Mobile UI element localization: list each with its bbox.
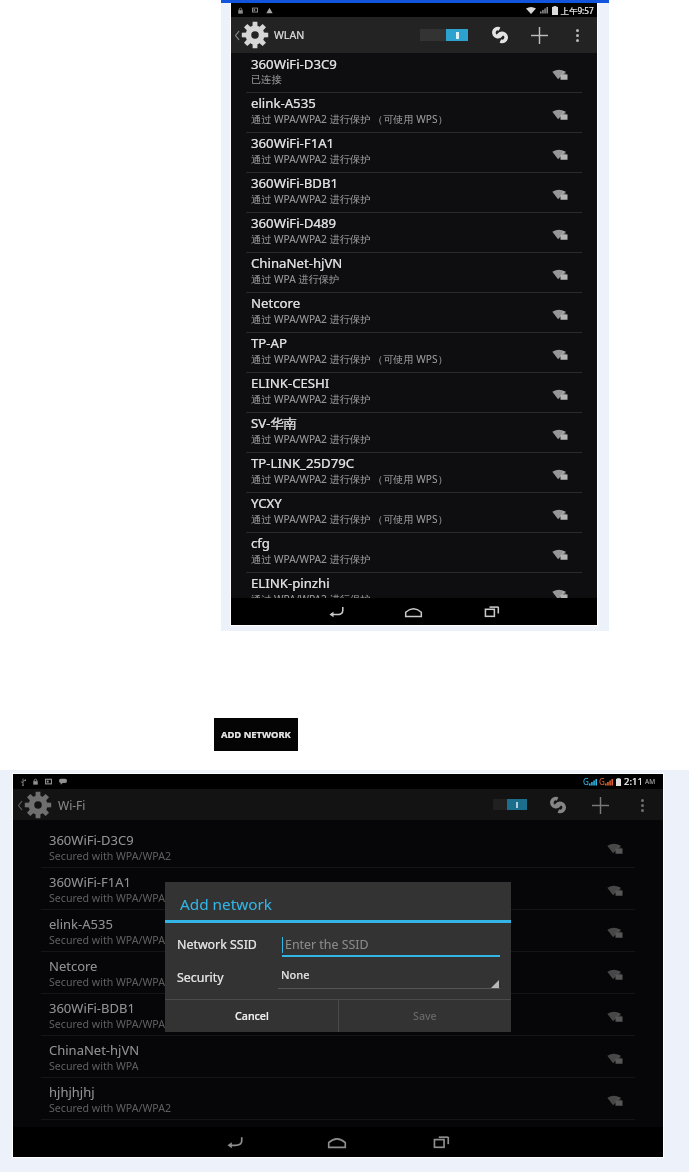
button[interactable]: Back <box>319 598 353 625</box>
staticText: 通过 WPA/WPA2 进行保护 <box>251 592 371 598</box>
staticText: 已连接 <box>251 73 282 86</box>
button[interactable]: ELINK-CESHI <box>231 373 597 413</box>
staticText: 上午9:57 <box>561 5 594 16</box>
staticText: Secured with WPA/WPA2 <box>49 891 172 905</box>
button[interactable]: SV-华南 <box>231 413 597 453</box>
button[interactable]: More options <box>627 790 657 820</box>
staticText: ELINK-pinzhi <box>251 574 330 592</box>
button[interactable]: Scan <box>543 790 573 820</box>
staticText: 通过 WPA/WPA2 进行保护 <box>251 152 371 166</box>
staticText: 360WiFi-BDB1 <box>251 174 339 192</box>
button[interactable] <box>231 20 270 50</box>
staticText: Netcore <box>251 294 301 312</box>
staticText: ELINK-CESHI <box>251 374 330 392</box>
button[interactable]: cfg <box>231 533 597 573</box>
staticText: Netcore <box>49 957 98 975</box>
staticText: 通过 WPA/WPA2 进行保护 <box>251 392 371 406</box>
button[interactable]: hjhjhjhj <box>13 1078 663 1120</box>
button[interactable]: Save <box>339 1000 511 1032</box>
button[interactable]: Enter the SSID <box>282 932 500 958</box>
button[interactable]: ADD NETWORK <box>214 718 298 751</box>
button[interactable]: TP-LINK_25D79C <box>231 453 597 493</box>
button[interactable]: Netcore <box>231 293 597 333</box>
staticText: Add network <box>180 894 272 915</box>
staticText: Enter the SSID <box>285 936 369 953</box>
button[interactable]: Add network <box>524 20 554 50</box>
button[interactable]: 360WiFi-D3C9 <box>13 826 663 868</box>
staticText: TP-AP <box>251 334 287 352</box>
staticText: SV-华南 <box>251 414 297 432</box>
staticText: 360WiFi-D489 <box>251 214 337 232</box>
staticText: 360WiFi-F1A1 <box>251 134 335 152</box>
button[interactable]: Home <box>396 598 430 625</box>
button[interactable]: 360WiFi-D489 <box>231 213 597 253</box>
staticText: ChinaNet-hjVN <box>49 1041 140 1059</box>
button[interactable]: Home <box>320 1127 354 1157</box>
button[interactable]: Recent apps <box>475 598 509 625</box>
button[interactable] <box>417 29 471 41</box>
staticText: 360WiFi-D3C9 <box>251 55 337 73</box>
staticText: TP-LINK_25D79C <box>251 454 355 472</box>
button[interactable] <box>489 799 531 810</box>
staticText: Secured with WPA/WPA2 <box>49 975 172 989</box>
button[interactable] <box>13 790 53 820</box>
staticText: Secured with WPA/WPA2 <box>49 849 172 863</box>
staticText: None <box>281 967 310 982</box>
staticText: 通过 WPA/WPA2 进行保护 <box>251 552 371 566</box>
button[interactable]: None <box>278 964 500 991</box>
staticText: G <box>599 776 605 787</box>
staticText: 通过 WPA/WPA2 进行保护 （可使用 WPS） <box>251 112 448 126</box>
staticText: WLAN <box>274 28 305 42</box>
button[interactable]: Back <box>218 1127 252 1157</box>
staticText: elink-A535 <box>251 94 316 112</box>
button[interactable]: Netcore <box>13 952 663 994</box>
staticText: cfg <box>251 534 270 552</box>
staticText: 360WiFi-D3C9 <box>49 831 134 849</box>
staticText: Cancel <box>235 1009 269 1024</box>
button[interactable]: 360WiFi-D3C9 <box>231 53 597 93</box>
staticText: ChinaNet-hjVN <box>251 254 343 272</box>
staticText: 通过 WPA/WPA2 进行保护 <box>251 232 371 246</box>
button[interactable]: Recent apps <box>424 1127 458 1157</box>
button[interactable]: ChinaNet-hjVN <box>231 253 597 293</box>
staticText: YCXY <box>251 494 282 512</box>
staticText: 通过 WPA/WPA2 进行保护 <box>251 192 371 206</box>
staticText: Security <box>177 969 224 986</box>
button[interactable]: Add network <box>585 790 615 820</box>
button[interactable]: 360WiFi-BDB1 <box>13 994 663 1036</box>
button[interactable]: Scan <box>485 20 515 50</box>
staticText: ADD NETWORK <box>221 728 291 741</box>
staticText: 2:11 <box>624 775 643 788</box>
staticText: 通过 WPA/WPA2 进行保护 （可使用 WPS） <box>251 512 448 526</box>
staticText: Secured with WPA/WPA2 <box>49 933 172 947</box>
button[interactable]: ELINK-pinzhi <box>231 573 597 598</box>
staticText: 通过 WPA 进行保护 <box>251 272 340 286</box>
staticText: 通过 WPA/WPA2 进行保护 <box>251 432 371 446</box>
button[interactable]: elink-A535 <box>13 910 663 952</box>
button[interactable]: Cancel <box>165 1000 338 1032</box>
button[interactable]: More options <box>562 20 592 50</box>
staticText: Secured with WPA/WPA2 <box>49 1017 172 1031</box>
staticText: Network SSID <box>177 936 257 953</box>
staticText: Wi-Fi <box>58 797 86 813</box>
staticText: elink-A535 <box>49 915 113 933</box>
button[interactable]: 360WiFi-F1A1 <box>13 868 663 910</box>
button[interactable]: YCXY <box>231 493 597 533</box>
staticText: hjhjhjhj <box>49 1083 95 1101</box>
staticText: Secured with WPA/WPA2 <box>49 1101 172 1115</box>
button[interactable]: 360WiFi-F1A1 <box>231 133 597 173</box>
button[interactable]: ChinaNet-hjVN <box>13 1036 663 1078</box>
staticText: AM <box>645 777 656 786</box>
button[interactable]: TP-AP <box>231 333 597 373</box>
staticText: 通过 WPA/WPA2 进行保护 （可使用 WPS） <box>251 352 448 366</box>
staticText: 通过 WPA/WPA2 进行保护 <box>251 312 371 326</box>
staticText: G <box>583 776 589 787</box>
button[interactable]: 360WiFi-BDB1 <box>231 173 597 213</box>
staticText: 360WiFi-F1A1 <box>49 873 131 891</box>
staticText: 360WiFi-BDB1 <box>49 999 135 1017</box>
button[interactable]: elink-A535 <box>231 93 597 133</box>
staticText: Secured with WPA <box>49 1059 139 1073</box>
staticText: Save <box>413 1009 437 1024</box>
staticText: 通过 WPA/WPA2 进行保护 （可使用 WPS） <box>251 472 448 486</box>
